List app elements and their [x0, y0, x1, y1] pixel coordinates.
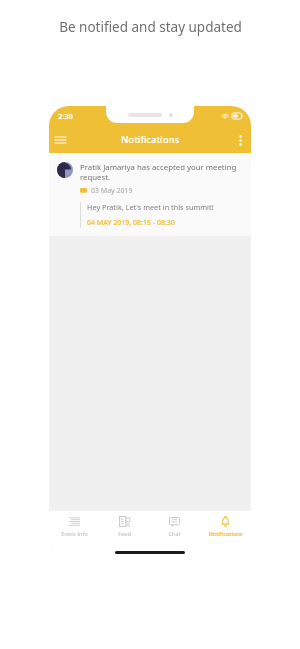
- button[interactable]: More options: [229, 129, 251, 151]
- staticText: 04 MAY 2019, 08:15 - 08:30: [87, 218, 175, 228]
- button[interactable]: Notifications: [200, 511, 251, 545]
- staticText: 2:30: [58, 111, 73, 121]
- staticText: 03 May 2019: [91, 186, 133, 196]
- staticText: Be notified and stay updated: [59, 18, 242, 36]
- button[interactable]: Menu: [49, 129, 71, 151]
- button[interactable]: Pratik Jamariya has accepted your meetin…: [49, 153, 251, 236]
- button[interactable]: Event Info: [49, 511, 99, 545]
- staticText: Feed: [118, 530, 131, 538]
- staticText: Notifications: [208, 530, 243, 538]
- button[interactable]: Feed: [99, 511, 149, 545]
- staticText: Notifications: [121, 133, 180, 146]
- staticText: Hey Pratik, Let's meet in this summit!: [87, 202, 214, 212]
- staticText: Chat: [168, 530, 181, 538]
- button[interactable]: Chat: [149, 511, 200, 545]
- staticText: Pratik Jamariya has accepted your meetin…: [80, 162, 241, 182]
- staticText: Event Info: [61, 530, 88, 538]
